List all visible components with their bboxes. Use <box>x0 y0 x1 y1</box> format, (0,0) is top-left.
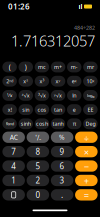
staticText: x! <box>8 106 12 113</box>
button[interactable]: 5 <box>27 160 49 172</box>
staticText: xʸ <box>56 78 61 85</box>
staticText: ln <box>72 92 76 99</box>
button[interactable]: 4 <box>2 160 25 172</box>
button[interactable]: ʸ√x <box>51 90 65 101</box>
staticText: 5 <box>35 161 40 171</box>
staticText: eˣ <box>72 78 77 85</box>
button[interactable]: 9 <box>51 146 73 157</box>
button[interactable]: Deg <box>83 118 98 129</box>
staticText: 0 <box>35 189 40 200</box>
button[interactable]: 0 <box>27 189 49 200</box>
staticText: ıl <box>79 2 83 11</box>
staticText: 1 <box>11 175 16 186</box>
staticText: . <box>61 189 63 200</box>
button[interactable]: % <box>51 132 73 143</box>
button[interactable]: 6 <box>51 160 73 172</box>
button[interactable]: . <box>51 189 73 200</box>
staticText: 2 <box>35 175 40 186</box>
button[interactable]: cos <box>35 104 49 115</box>
staticText: 6 <box>60 161 65 171</box>
staticText: sin <box>22 106 29 113</box>
button[interactable]: AC <box>2 132 25 143</box>
button[interactable]: ( <box>2 62 17 72</box>
button[interactable]: cosh <box>35 118 49 129</box>
staticText: Rand <box>6 121 14 126</box>
button[interactable]: tanh <box>51 118 65 129</box>
staticText: 9 <box>60 146 65 157</box>
staticText: AC <box>10 133 18 142</box>
button[interactable]: m+ <box>51 62 65 72</box>
button[interactable]: eˣ <box>67 76 81 87</box>
button[interactable]: + <box>75 175 98 186</box>
button[interactable]: 1 <box>2 175 25 186</box>
staticText: 8 <box>35 146 40 157</box>
button[interactable]: = <box>75 189 98 200</box>
button[interactable]: 7 <box>2 146 25 157</box>
button[interactable]: 8 <box>27 146 49 157</box>
staticText: mr <box>87 63 94 71</box>
staticText: m+ <box>54 63 62 71</box>
staticText: tanh <box>53 120 64 127</box>
staticText: 2ⁿᵈ <box>6 78 13 85</box>
button[interactable]: m- <box>67 62 81 72</box>
button[interactable]: EE <box>83 104 98 115</box>
button[interactable]: ln <box>67 90 81 101</box>
staticText: mc <box>38 63 46 71</box>
staticText: 10ˣ <box>86 78 94 85</box>
button[interactable]: ¹⁄x <box>2 90 17 101</box>
button[interactable]: x³ <box>35 76 49 87</box>
staticText: ÷ <box>84 132 89 143</box>
button[interactable]: ) <box>19 62 33 72</box>
button[interactable]: 2 <box>27 175 49 186</box>
button[interactable]: x² <box>18 76 33 87</box>
staticText: − <box>84 160 89 172</box>
button[interactable]: x! <box>2 104 17 115</box>
staticText: e <box>73 106 76 113</box>
button[interactable]: ²√x <box>18 90 33 101</box>
button[interactable]: × <box>75 146 98 157</box>
staticText: 484÷282 <box>74 24 95 31</box>
staticText: × <box>84 146 89 157</box>
staticText: Deg <box>85 120 95 127</box>
button[interactable]: Calculator mode <box>2 189 25 200</box>
button[interactable]: xʸ <box>51 76 65 87</box>
button[interactable]: tan <box>51 104 65 115</box>
staticText: x³ <box>39 78 44 85</box>
button[interactable]: mr <box>83 62 98 72</box>
button[interactable]: e <box>67 104 81 115</box>
staticText: ( <box>9 63 11 71</box>
staticText: 1.716312057 <box>11 31 95 51</box>
staticText: % <box>59 133 65 142</box>
button[interactable]: mc <box>35 62 49 72</box>
staticText: EE <box>87 106 93 113</box>
button[interactable]: π <box>67 118 81 129</box>
staticText: cos <box>37 106 46 113</box>
staticText: = <box>84 189 89 200</box>
staticText: 3 <box>60 175 65 186</box>
button[interactable]: 2ⁿᵈ <box>2 76 17 87</box>
staticText: ³√x <box>38 92 46 99</box>
staticText: π <box>73 120 76 127</box>
button[interactable]: ⁺∕₋ <box>27 132 49 143</box>
staticText: x² <box>23 78 28 85</box>
staticText: tan <box>54 106 62 113</box>
staticText: ¹⁄x <box>7 92 13 99</box>
staticText: 7 <box>11 146 16 157</box>
staticText: 01:26 <box>8 1 30 12</box>
button[interactable]: ÷ <box>75 132 98 143</box>
staticText: sinh <box>21 120 31 127</box>
button[interactable]: 10ˣ <box>83 76 98 87</box>
staticText: m- <box>71 63 78 71</box>
staticText: log₁₀ <box>87 93 94 98</box>
button[interactable]: ³√x <box>35 90 49 101</box>
staticText: 4 <box>11 161 16 171</box>
staticText: + <box>84 175 89 186</box>
button[interactable]: − <box>75 160 98 172</box>
button[interactable]: 3 <box>51 175 73 186</box>
staticText: ²√x <box>22 92 30 99</box>
button[interactable]: Rand <box>2 118 17 129</box>
button[interactable]: sinh <box>18 118 33 129</box>
button[interactable]: sin <box>18 104 33 115</box>
button[interactable]: log₁₀ <box>83 90 98 101</box>
staticText: ʸ√x <box>54 92 62 99</box>
